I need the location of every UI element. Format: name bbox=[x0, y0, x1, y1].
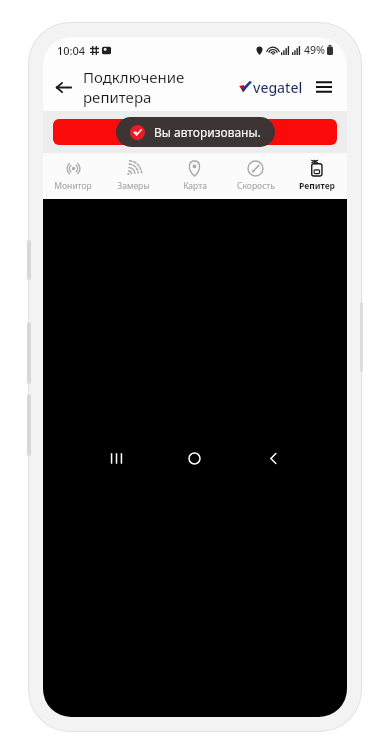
staticText: 10:04 bbox=[57, 43, 86, 58]
staticText: Карта bbox=[183, 180, 207, 192]
button[interactable]: Menu bbox=[309, 72, 339, 102]
button[interactable]: Карта bbox=[164, 153, 225, 199]
staticText: Монитор bbox=[54, 180, 92, 192]
button[interactable]: Recents bbox=[77, 199, 155, 717]
staticText: vegatel bbox=[253, 78, 303, 97]
button[interactable]: Скорость bbox=[225, 153, 286, 199]
staticText: Вы авторизованы. bbox=[154, 124, 261, 140]
button[interactable]: Home bbox=[155, 199, 234, 717]
staticText: Замеры bbox=[117, 180, 150, 192]
staticText: Подключение bbox=[83, 67, 185, 87]
staticText: 49% bbox=[304, 43, 325, 57]
button[interactable]: Монитор bbox=[43, 153, 103, 199]
button[interactable]: Авторизация bbox=[53, 119, 337, 145]
staticText: репитера bbox=[83, 87, 152, 107]
button[interactable]: Замеры bbox=[103, 153, 164, 199]
button[interactable]: Back bbox=[234, 199, 313, 717]
staticText: Скорость bbox=[237, 180, 275, 192]
staticText: Репитер bbox=[299, 180, 335, 192]
button[interactable]: Back bbox=[43, 67, 83, 107]
button[interactable]: Репитер bbox=[286, 153, 347, 199]
